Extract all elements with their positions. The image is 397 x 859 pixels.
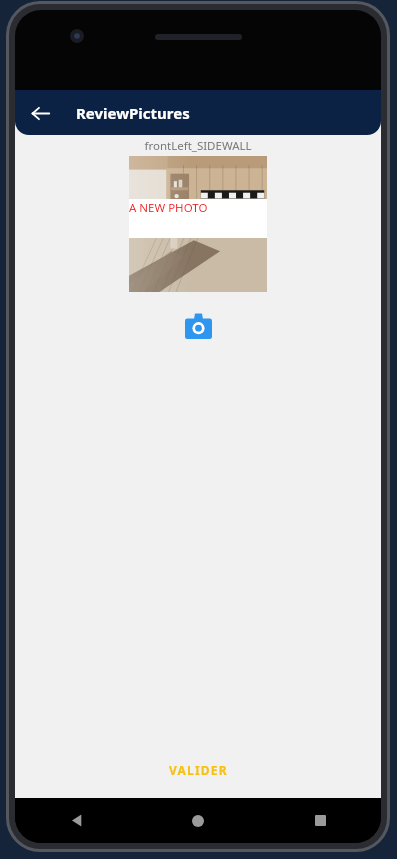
button[interactable]: Recent apps xyxy=(259,798,381,843)
button[interactable]: Back xyxy=(15,798,137,843)
button[interactable]: VALIDER xyxy=(157,756,240,784)
staticText: VALIDER xyxy=(169,762,228,778)
staticText: frontLeft_SIDEWALL xyxy=(144,138,252,154)
button[interactable]: Photo frontLeft_SIDEWALL xyxy=(129,156,267,292)
button[interactable]: Take photo xyxy=(181,308,215,342)
staticText: ReviewPictures xyxy=(76,103,190,123)
button[interactable]: Home xyxy=(137,798,259,843)
staticText: A NEW PHOTO xyxy=(129,200,208,216)
button[interactable]: Back xyxy=(24,97,56,129)
